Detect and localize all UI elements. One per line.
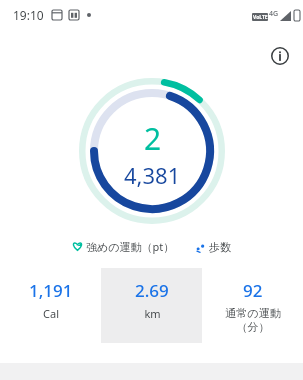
button[interactable]: 92	[202, 268, 303, 343]
staticText: Cal	[43, 306, 59, 321]
staticText: 4G	[269, 9, 279, 19]
staticText: 2.69	[135, 279, 169, 302]
staticText: 強めの運動（pt）	[86, 239, 175, 254]
button[interactable]: 情報	[263, 39, 297, 73]
staticText: 92	[243, 279, 263, 302]
staticText: 歩数	[209, 240, 231, 254]
button[interactable]: 1,191	[0, 268, 101, 343]
button[interactable]: 強めの運動（pt）	[69, 235, 178, 258]
staticText: VoLTE	[253, 14, 268, 21]
staticText: 1,191	[29, 279, 73, 302]
staticText: 通常の運動 （分）	[225, 306, 281, 334]
button[interactable]: 歩数	[192, 236, 234, 258]
staticText: 19:10	[13, 7, 44, 23]
staticText: 2	[144, 118, 162, 159]
staticText: km	[144, 306, 161, 321]
staticText: 4,381	[124, 160, 181, 190]
button[interactable]: 2.69	[101, 268, 202, 343]
